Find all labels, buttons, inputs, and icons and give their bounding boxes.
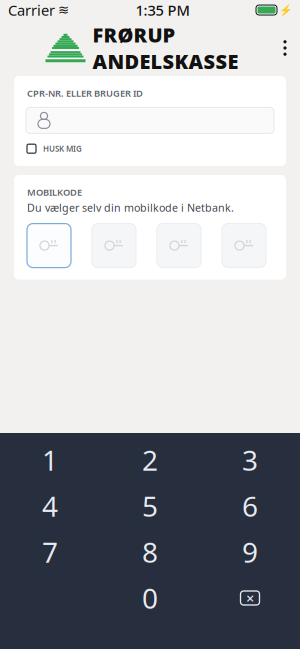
- staticText: 1: [42, 441, 58, 479]
- staticText: 8: [142, 533, 158, 571]
- button[interactable]: Slet: [200, 575, 300, 621]
- button[interactable]: 0: [100, 575, 200, 621]
- staticText: ×: [246, 588, 254, 608]
- staticText: 2: [142, 441, 158, 479]
- button[interactable]: 8: [100, 529, 200, 575]
- staticText: HUSK MIG: [43, 143, 82, 154]
- staticText: ≋: [58, 2, 69, 17]
- button[interactable]: 5: [100, 483, 200, 529]
- staticText: FRØRUP: [92, 21, 175, 48]
- button[interactable]: Mobilkode ciffer 1: [27, 224, 71, 268]
- button[interactable]: 6: [200, 483, 300, 529]
- staticText: 4: [42, 487, 58, 525]
- staticText: Du vælger selv din mobilkode i Netbank.: [27, 200, 234, 215]
- button[interactable]: 1: [0, 437, 100, 483]
- button[interactable]: 9: [200, 529, 300, 575]
- button[interactable]: 2: [100, 437, 200, 483]
- button[interactable]: Menu: [270, 26, 300, 70]
- button[interactable]: CPR-nummer eller bruger ID: [14, 99, 286, 133]
- staticText: 6: [242, 487, 258, 525]
- staticText: 0: [142, 579, 158, 617]
- staticText: 5: [142, 487, 158, 525]
- button[interactable]: HUSK MIG: [14, 133, 286, 166]
- staticText: ANDELSKASSE: [92, 48, 238, 75]
- button[interactable]: Mobilkode ciffer 2: [92, 224, 136, 268]
- staticText: CPR-NR. ELLER BRUGER ID: [27, 87, 143, 99]
- staticText: Carrier: [8, 0, 55, 20]
- button[interactable]: Mobilkode ciffer 4: [222, 224, 266, 268]
- staticText: 7: [42, 533, 58, 571]
- button[interactable]: 7: [0, 529, 100, 575]
- staticText: 3: [242, 441, 258, 479]
- staticText: ⚡: [279, 4, 292, 16]
- staticText: MOBILKODE: [27, 186, 82, 198]
- button[interactable]: 4: [0, 483, 100, 529]
- staticText: 1:35 PM: [135, 0, 189, 20]
- button[interactable]: 3: [200, 437, 300, 483]
- button[interactable]: Mobilkode ciffer 3: [157, 224, 201, 268]
- staticText: 9: [242, 533, 258, 571]
